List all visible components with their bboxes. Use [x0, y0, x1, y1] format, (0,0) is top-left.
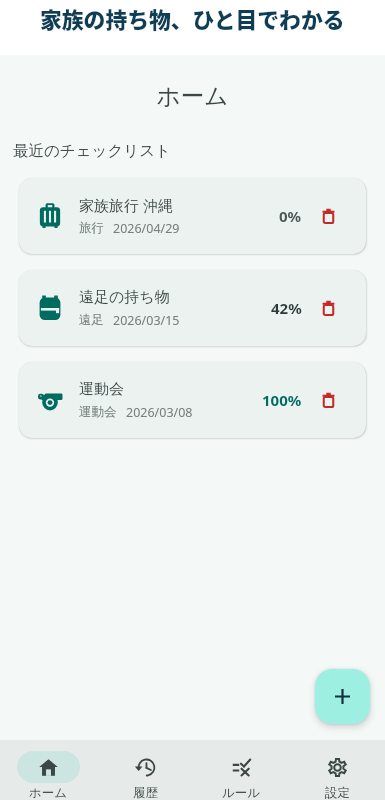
staticText: 遠足	[79, 312, 104, 328]
staticText: 旅行	[79, 220, 104, 236]
button[interactable]: 追加	[315, 669, 370, 724]
staticText: 遠足の持ち物	[79, 288, 170, 307]
staticText: 運動会	[79, 380, 124, 399]
button[interactable]: ホーム	[0, 751, 97, 800]
staticText: 100%	[262, 390, 302, 410]
button[interactable]: ルール	[193, 751, 289, 800]
button[interactable]: 運動会	[19, 362, 366, 438]
button[interactable]: 削除	[313, 293, 343, 323]
staticText: ルール	[222, 785, 261, 800]
staticText: 設定	[325, 785, 350, 800]
staticText: 履歴	[133, 785, 158, 800]
staticText: 家族の持ち物、ひと目でわかる	[40, 3, 345, 35]
button[interactable]: 履歴	[97, 751, 193, 800]
staticText: 42%	[271, 298, 302, 318]
staticText: 0%	[279, 206, 302, 226]
staticText: ホーム	[0, 81, 385, 111]
staticText: ホーム	[29, 785, 68, 800]
staticText: 最近のチェックリスト	[13, 141, 171, 161]
staticText: 2026/04/29	[113, 220, 180, 237]
staticText: 2026/03/15	[113, 312, 180, 329]
button[interactable]: 遠足の持ち物	[19, 270, 366, 346]
staticText: 2026/03/08	[126, 404, 193, 421]
button[interactable]: 削除	[313, 385, 343, 415]
button[interactable]: 家族旅行 沖縄	[19, 178, 366, 254]
staticText: 運動会	[79, 404, 117, 420]
button[interactable]: 削除	[313, 201, 343, 231]
staticText: 家族旅行 沖縄	[79, 195, 173, 215]
button[interactable]: 設定	[289, 751, 385, 800]
